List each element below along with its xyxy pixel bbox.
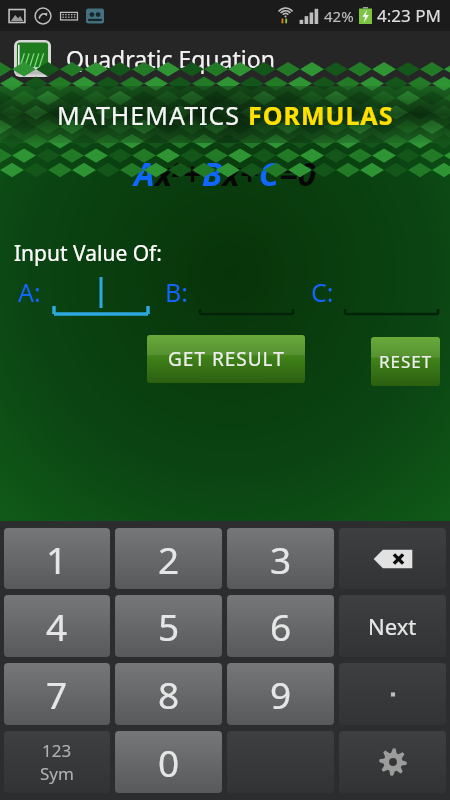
button[interactable]: Settings [339, 731, 446, 793]
staticText: Ax2+Bx+C=0 [134, 151, 316, 196]
staticText: 9 [270, 669, 292, 719]
button[interactable]: Symbols [4, 731, 110, 793]
button[interactable]: Next [339, 595, 446, 657]
staticText: C: [311, 275, 334, 309]
staticText: RESET [379, 350, 433, 373]
button[interactable]: 8 [115, 663, 222, 725]
button[interactable]: 2 [115, 528, 222, 589]
button[interactable]: GET RESULT [147, 335, 305, 383]
button[interactable]: 9 [227, 663, 334, 725]
staticText: FORMULAS [248, 98, 394, 132]
button[interactable]: Space [227, 731, 334, 793]
staticText: 7 [46, 669, 68, 719]
button[interactable]: RESET [371, 337, 440, 386]
staticText: 0 [158, 737, 180, 787]
staticText: 2 [158, 534, 180, 584]
button[interactable]: 4 [4, 595, 110, 657]
staticText: A: [18, 275, 41, 309]
staticText: Sym [40, 762, 74, 785]
staticText: 4 [46, 601, 68, 651]
button[interactable]: 5 [115, 595, 222, 657]
button[interactable]: 6 [227, 595, 334, 657]
button[interactable]: 1 [4, 528, 110, 589]
button[interactable]: 0 [115, 731, 222, 793]
staticText: MATHEMATICS [57, 98, 248, 132]
staticText: 4:23 PM [377, 4, 441, 27]
staticText: GET RESULT [168, 346, 285, 372]
button[interactable]: 7 [4, 663, 110, 725]
staticText: 3 [270, 534, 292, 584]
staticText: 123 [42, 739, 72, 762]
staticText: 8 [158, 669, 180, 719]
staticText: 6 [270, 601, 292, 651]
button[interactable]: Backspace [339, 528, 446, 589]
button[interactable]: 3 [227, 528, 334, 589]
staticText: Input Value Of: [14, 239, 162, 268]
staticText: B: [165, 275, 188, 309]
staticText: Next [368, 611, 417, 641]
staticText: 5 [158, 601, 180, 651]
staticText: 42% [324, 6, 354, 26]
staticText: Quadratic Equation [66, 43, 275, 74]
button[interactable]: Period [339, 663, 446, 725]
staticText: 1 [46, 534, 68, 584]
